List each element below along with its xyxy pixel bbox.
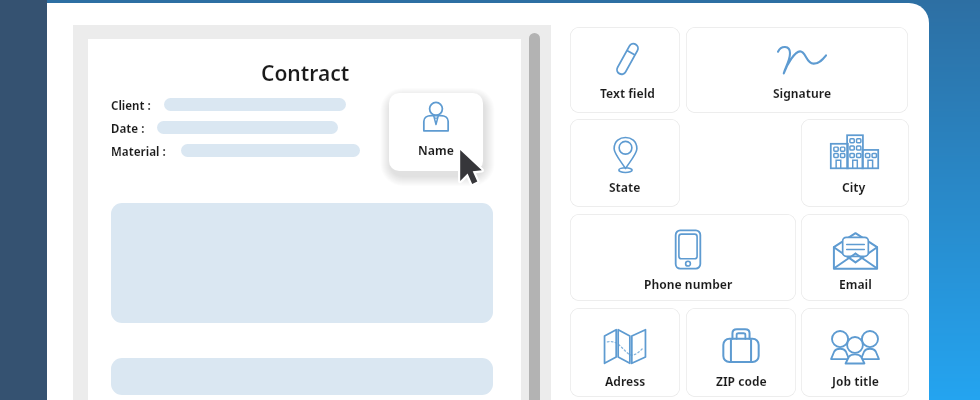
staticText: Phone number: [644, 276, 733, 292]
staticText: Email: [839, 276, 872, 292]
other: Pointer: [457, 147, 483, 187]
staticText: Name: [418, 142, 454, 158]
staticText: Contract: [261, 59, 350, 88]
button[interactable]: State: [570, 119, 680, 207]
button[interactable]: Phone number: [570, 214, 796, 301]
staticText: Material :: [111, 144, 166, 158]
staticText: State: [609, 179, 641, 195]
staticText: Text field: [600, 85, 655, 101]
staticText: ZIP code: [716, 373, 767, 389]
button[interactable]: Name: [389, 93, 483, 171]
button[interactable]: ZIP code: [686, 308, 796, 397]
staticText: Adress: [605, 373, 646, 389]
button[interactable]: Text field: [570, 27, 680, 113]
staticText: Date :: [111, 121, 145, 135]
button[interactable]: Email: [801, 214, 909, 301]
staticText: Signature: [773, 85, 832, 101]
button[interactable]: Signature: [686, 27, 908, 113]
staticText: Client :: [111, 98, 151, 112]
button[interactable]: Adress: [570, 308, 680, 397]
staticText: Job title: [832, 373, 879, 389]
button[interactable]: City: [801, 119, 909, 207]
staticText: City: [842, 179, 866, 195]
button[interactable]: Job title: [801, 308, 909, 397]
